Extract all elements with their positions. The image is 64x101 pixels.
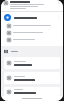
button[interactable] [4, 72, 60, 84]
button[interactable] [7, 37, 60, 42]
button[interactable] [7, 30, 60, 35]
button[interactable]: Expand [4, 14, 60, 21]
button[interactable] [4, 49, 60, 54]
button[interactable] [4, 87, 60, 96]
button[interactable]: More options [1, 0, 63, 11]
button[interactable] [7, 23, 60, 28]
button[interactable]: Expand [56, 16, 60, 20]
button[interactable] [4, 57, 60, 69]
button[interactable]: More options [56, 1, 60, 5]
